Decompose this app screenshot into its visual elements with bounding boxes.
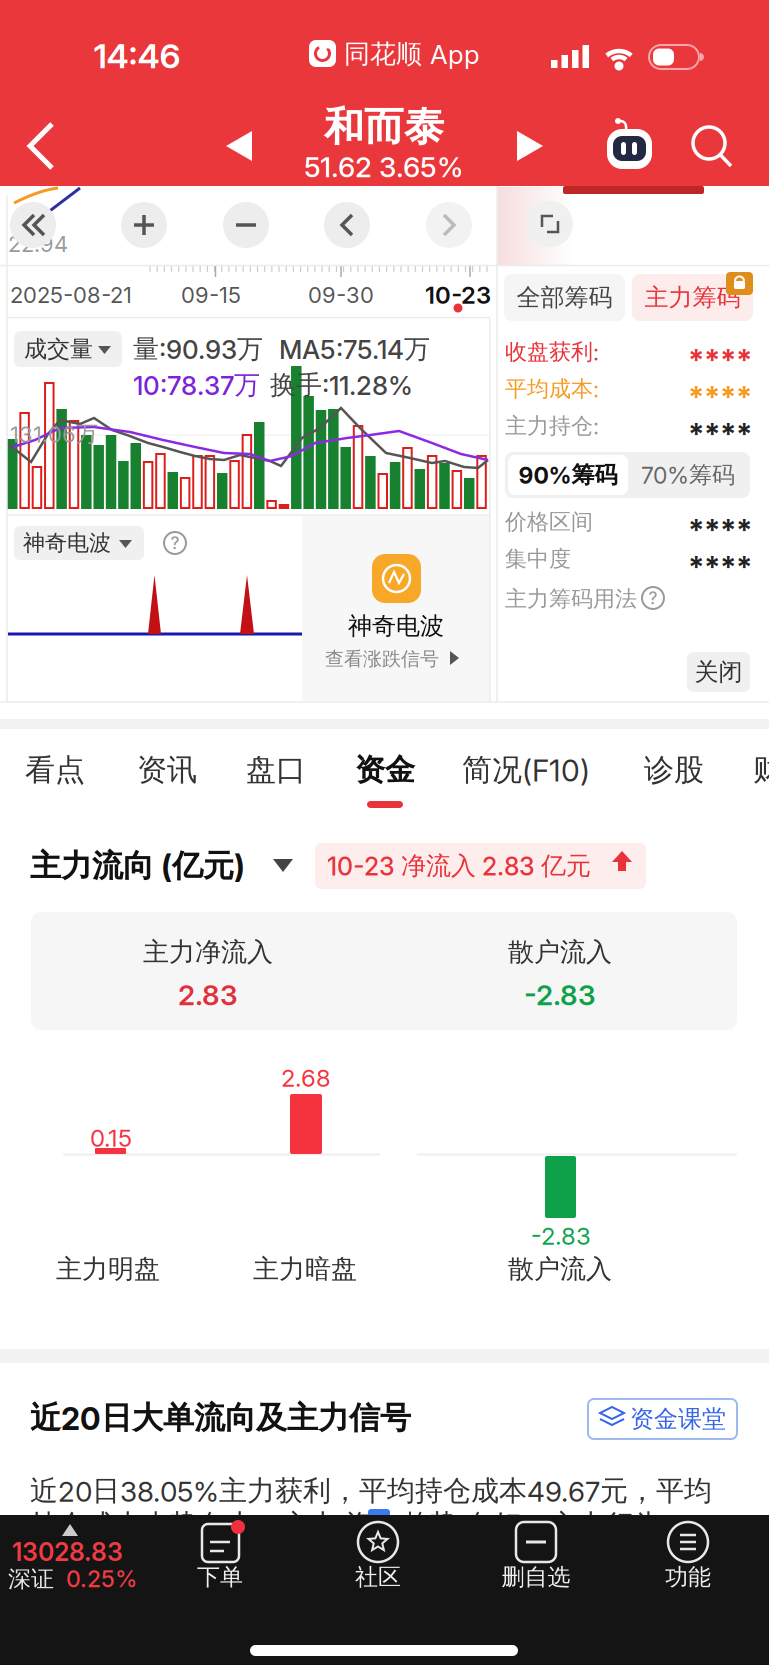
staticText: 主力筹码 bbox=[644, 283, 740, 312]
staticText: 70%筹码 bbox=[641, 461, 735, 489]
staticText: 下单 bbox=[197, 1563, 243, 1591]
button[interactable]: pan left bbox=[324, 202, 370, 248]
staticText: 散户流入 bbox=[508, 936, 612, 968]
button[interactable]: 简况(F10) bbox=[446, 740, 606, 800]
staticText: 2.68 bbox=[281, 1064, 331, 1092]
staticText: 主力明盘 bbox=[56, 1253, 160, 1285]
staticText: 全部筹码 bbox=[516, 283, 612, 312]
button[interactable]: 神奇电波 bbox=[14, 526, 144, 560]
staticText: 简况(F10) bbox=[462, 752, 590, 788]
staticText: 神奇电波 bbox=[348, 611, 444, 641]
staticText: 社区 bbox=[355, 1563, 401, 1591]
staticText: 财务 bbox=[753, 752, 769, 788]
staticText: 90%筹码 bbox=[518, 461, 617, 489]
staticText: 诊股 bbox=[644, 752, 704, 788]
staticText: 查看涨跌信号 bbox=[325, 647, 439, 671]
staticText: 持仓成本走势向上，主力 资金趋势 向好，主力行为 bbox=[30, 1508, 662, 1542]
staticText: 51.62 3.65% bbox=[304, 150, 464, 183]
button[interactable]: 删自选 bbox=[481, 1518, 591, 1602]
button[interactable]: 功能 bbox=[633, 1518, 743, 1602]
staticText: 2.83 bbox=[178, 978, 238, 1011]
staticText: 10-23 净流入 2.83 亿元 bbox=[327, 851, 591, 881]
staticText: -2.83 bbox=[524, 978, 596, 1011]
staticText: **** bbox=[688, 549, 752, 585]
button[interactable]: 下单 bbox=[165, 1518, 275, 1602]
staticText: 神奇电波 bbox=[23, 529, 111, 556]
staticText: 深证 bbox=[8, 1565, 54, 1593]
staticText: 价格区间 bbox=[505, 508, 593, 535]
button[interactable]: 90%筹码 bbox=[508, 455, 628, 495]
staticText: 131.06万 bbox=[10, 420, 98, 447]
button[interactable]: 主力流向 bbox=[30, 843, 300, 889]
staticText: 集中度 bbox=[505, 545, 571, 572]
button[interactable]: 社区 bbox=[323, 1518, 433, 1602]
staticText: 主力筹码用法 bbox=[505, 585, 637, 612]
button[interactable]: 深证指数 bbox=[0, 1515, 145, 1603]
staticText: 2025-08-21 bbox=[10, 282, 132, 308]
staticText: 10-23 bbox=[425, 281, 491, 309]
button[interactable]: Previous stock bbox=[214, 121, 266, 171]
staticText: 删自选 bbox=[501, 1563, 570, 1591]
button[interactable]: 资讯 bbox=[87, 740, 247, 800]
staticText: 近20日38.05%主力获利，平均持仓成本49.67元，平均 bbox=[30, 1474, 712, 1508]
staticText: 关闭 bbox=[694, 657, 742, 687]
staticText: ? bbox=[648, 588, 657, 608]
button[interactable]: Search bbox=[683, 115, 745, 177]
button[interactable]: rewind bbox=[10, 202, 56, 248]
button[interactable]: 查看涨跌信号 bbox=[302, 516, 490, 701]
staticText: 盘口 bbox=[246, 752, 306, 788]
button[interactable]: 关闭 bbox=[687, 652, 750, 692]
staticText: 资讯 bbox=[137, 752, 197, 788]
button[interactable]: Back bbox=[14, 108, 78, 184]
staticText: **** bbox=[688, 342, 752, 378]
staticText: 收盘获利: bbox=[505, 338, 599, 365]
button[interactable]: Expand bbox=[527, 201, 573, 247]
staticText: 量:90.93万 MA5:75.14万 bbox=[133, 333, 430, 365]
staticText: 0.15 bbox=[90, 1124, 132, 1152]
staticText: **** bbox=[688, 512, 752, 548]
staticText: 22.94 bbox=[8, 231, 68, 257]
button[interactable]: 诊股 bbox=[594, 740, 754, 800]
staticText: 09-30 bbox=[308, 282, 374, 308]
staticText: 资金课堂 bbox=[630, 1404, 726, 1434]
button[interactable]: 盘口 bbox=[196, 740, 356, 800]
button[interactable]: 看点 bbox=[0, 740, 135, 800]
staticText: 同花顺 App bbox=[344, 38, 480, 70]
staticText: 资金 bbox=[355, 752, 415, 788]
staticText: 成交量 bbox=[24, 335, 93, 363]
staticText: 10:78.37万 bbox=[133, 369, 260, 401]
button[interactable]: Next stock bbox=[503, 121, 555, 171]
button[interactable]: 全部筹码 bbox=[504, 274, 625, 321]
staticText: 主力持仓: bbox=[505, 412, 599, 439]
staticText: 看点 bbox=[25, 752, 85, 788]
staticText: 主力净流入 bbox=[143, 936, 273, 968]
button[interactable]: 资金 bbox=[305, 740, 465, 800]
button[interactable]: AI assistant bbox=[596, 112, 662, 178]
staticText: 14:46 bbox=[93, 36, 180, 76]
button[interactable]: 主力筹码 bbox=[632, 274, 753, 321]
staticText: 0.25% bbox=[66, 1565, 137, 1592]
button[interactable]: zoom in bbox=[121, 202, 167, 248]
button[interactable]: 70%筹码 bbox=[628, 455, 748, 495]
button[interactable]: 成交量 bbox=[14, 331, 122, 367]
button[interactable]: 筹码用法帮助 bbox=[640, 585, 666, 611]
staticText: 主力暗盘 bbox=[253, 1253, 357, 1285]
staticText: ? bbox=[170, 533, 179, 553]
staticText: 和而泰 bbox=[324, 102, 444, 151]
button[interactable]: zoom out bbox=[223, 202, 269, 248]
staticText: 散户流入 bbox=[508, 1253, 612, 1285]
staticText: -2.83 bbox=[531, 1222, 591, 1250]
staticText: 平均成本: bbox=[505, 375, 599, 402]
staticText: 13028.83 bbox=[12, 1537, 123, 1567]
staticText: 主力流向 (亿元) bbox=[30, 847, 245, 885]
staticText: 功能 bbox=[665, 1563, 711, 1591]
button[interactable]: pan right bbox=[426, 202, 472, 248]
button[interactable]: 资金课堂 bbox=[588, 1399, 737, 1439]
staticText: 近20日大单流向及主力信号 bbox=[30, 1399, 411, 1437]
staticText: **** bbox=[688, 379, 752, 415]
button[interactable]: 净流入详情 bbox=[315, 843, 646, 889]
button[interactable]: 帮助 bbox=[162, 530, 188, 556]
staticText: 换手:11.28% bbox=[270, 369, 413, 401]
staticText: **** bbox=[688, 416, 752, 452]
staticText: 09-15 bbox=[181, 282, 241, 308]
